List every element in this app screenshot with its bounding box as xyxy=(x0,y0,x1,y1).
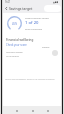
staticText: Saved towards target xyxy=(25,16,49,19)
staticText: goals completed xyxy=(25,28,43,31)
staticText: 9:41 xyxy=(5,0,11,4)
staticText: Check your score xyxy=(6,43,27,47)
staticText: Terms and conditions apply to all saving… xyxy=(5,78,55,81)
button[interactable]: Progress xyxy=(44,5,61,12)
button[interactable]: Back xyxy=(3,5,9,11)
staticText: 1 of 20 xyxy=(25,20,39,26)
button[interactable]: Add xyxy=(52,50,58,56)
staticText: Monthly saving xyxy=(6,51,23,54)
button[interactable]: Back xyxy=(14,108,19,113)
staticText: Savings target xyxy=(9,6,33,11)
staticText: All accounts xyxy=(6,55,19,58)
button[interactable]: Home xyxy=(30,108,35,113)
staticText: 45% xyxy=(12,22,18,26)
button[interactable]: Recents xyxy=(45,108,50,113)
staticText: ▲●▮ xyxy=(53,1,59,4)
staticText: Financial wellbeing xyxy=(6,38,34,42)
staticText: Details xyxy=(42,46,50,49)
